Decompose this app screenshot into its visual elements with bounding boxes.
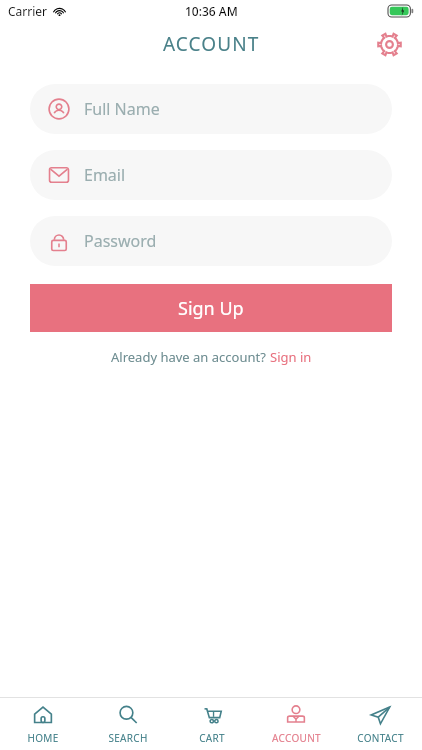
button[interactable]: Settings [372, 27, 406, 61]
staticText: Password [84, 230, 157, 252]
button[interactable]: Sign Up [30, 284, 392, 332]
button[interactable]: CART [170, 698, 254, 750]
button[interactable]: Password [30, 216, 392, 266]
button[interactable]: ACCOUNT [254, 698, 338, 750]
staticText: Sign in [270, 348, 312, 366]
staticText: Carrier [8, 3, 48, 19]
staticText: Email [84, 164, 126, 186]
staticText: HOME [27, 731, 59, 744]
button[interactable]: HOME [0, 698, 85, 750]
button[interactable]: CONTACT [338, 698, 422, 750]
staticText: 10:36 AM [185, 3, 238, 19]
staticText: Already have an account? [111, 348, 270, 366]
staticText: CONTACT [357, 731, 404, 744]
staticText: ACCOUNT [163, 31, 260, 57]
staticText: Full Name [84, 98, 160, 120]
staticText: SEARCH [108, 731, 148, 744]
staticText: Sign Up [178, 296, 244, 321]
button[interactable]: Email [30, 150, 392, 200]
button[interactable]: SEARCH [85, 698, 170, 750]
button[interactable]: Sign in [270, 348, 312, 366]
staticText: CART [199, 731, 225, 744]
staticText: ACCOUNT [272, 731, 321, 744]
button[interactable]: Full Name [30, 84, 392, 134]
